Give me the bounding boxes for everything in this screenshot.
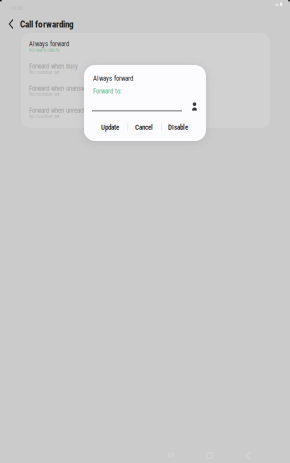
button[interactable]: Always forward (21, 36, 269, 58)
button[interactable]: Cancel (132, 120, 156, 134)
staticText: Call forwarding (20, 19, 74, 30)
staticText: Disable (168, 123, 188, 131)
staticText: No number set (29, 69, 60, 75)
staticText: Always forward (29, 40, 69, 48)
button[interactable]: Disable (166, 120, 190, 134)
staticText: Forward when unanswered (29, 85, 96, 92)
button[interactable]: Update (98, 120, 122, 134)
button[interactable]: Forward when busy (21, 58, 269, 80)
staticText: Update (101, 123, 119, 131)
staticText: Forward when unreachable (29, 107, 97, 114)
button[interactable]: Choose from contacts (192, 102, 197, 111)
staticText: Always forward (93, 74, 133, 82)
staticText: 10:00 (10, 4, 23, 11)
button[interactable]: Forward when unanswered (21, 80, 269, 102)
staticText: Forward to: (93, 87, 122, 95)
staticText: Cancel (135, 123, 153, 131)
staticText: No number set (29, 91, 60, 97)
staticText: Forward calls to (29, 47, 60, 53)
staticText: No number set (29, 113, 60, 120)
button[interactable]: Back (1, 17, 21, 31)
staticText: Forward when busy (29, 62, 78, 70)
button[interactable]: Forward when unreachable (21, 103, 269, 125)
